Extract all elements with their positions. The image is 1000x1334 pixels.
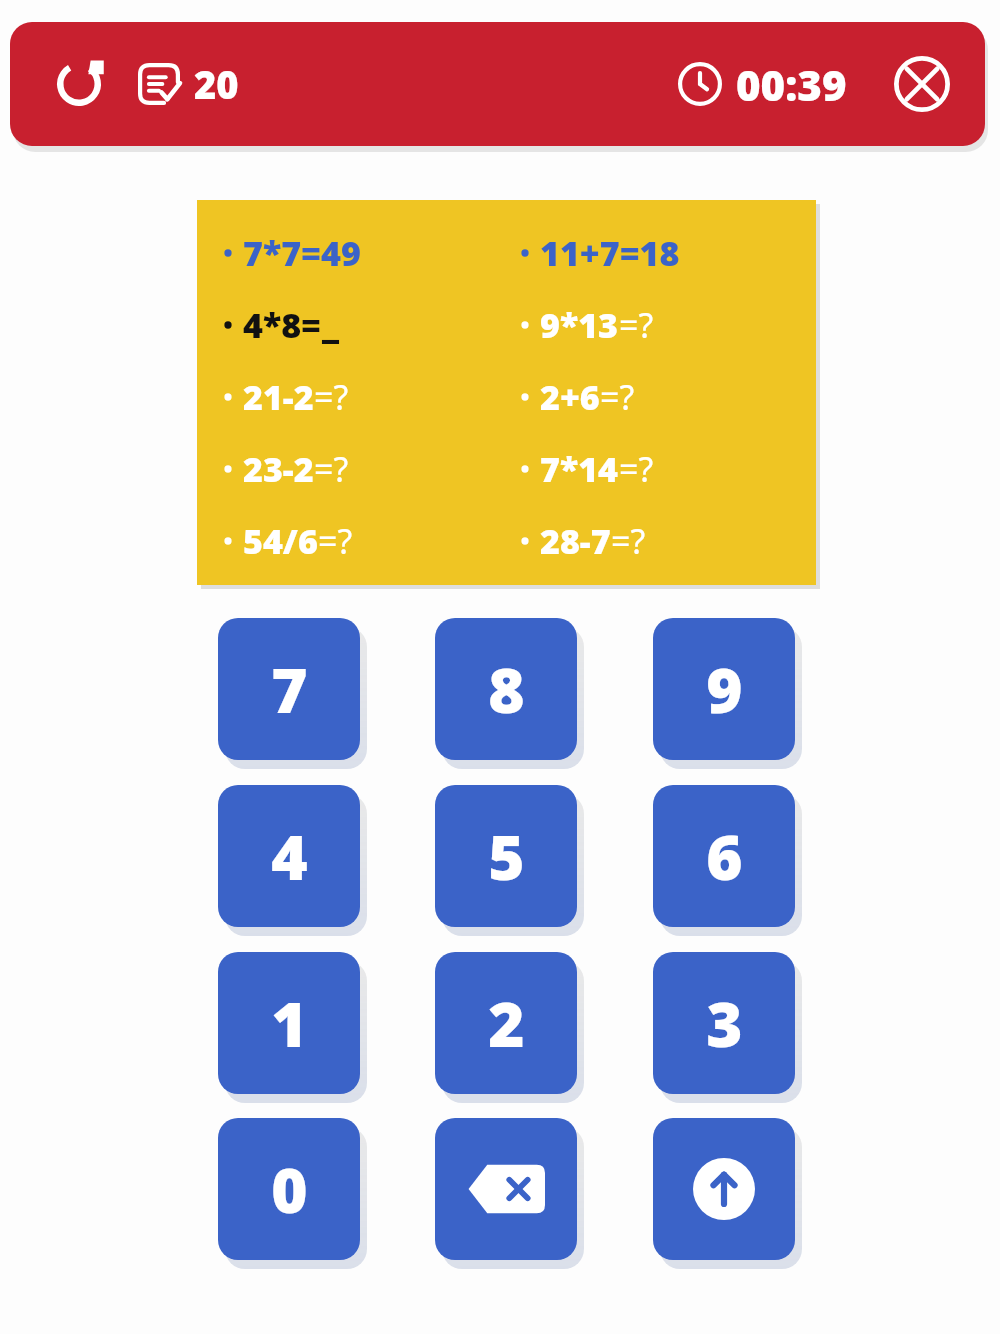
button[interactable]: 5: [435, 785, 577, 927]
staticText: 0: [271, 1147, 308, 1231]
staticText: =?: [619, 302, 654, 348]
staticText: 4: [271, 814, 308, 898]
button[interactable]: 2+6: [518, 374, 816, 420]
button[interactable]: 11+7=18: [518, 230, 816, 276]
button[interactable]: 6: [653, 785, 795, 927]
button[interactable]: 23-2: [221, 446, 506, 492]
button[interactable]: Restart: [40, 45, 118, 123]
button[interactable]: 7*7=49: [221, 230, 506, 276]
button[interactable]: 4*8=: [221, 302, 506, 348]
button[interactable]: 20: [138, 44, 239, 124]
button[interactable]: 1: [218, 952, 360, 1094]
button[interactable]: Submit: [653, 1118, 795, 1260]
button[interactable]: 4: [218, 785, 360, 927]
staticText: _: [322, 302, 339, 348]
button[interactable]: 8: [435, 618, 577, 760]
staticText: 6: [706, 814, 743, 898]
button[interactable]: 28-7: [518, 518, 816, 564]
staticText: 23-2: [243, 446, 314, 492]
staticText: 2+6: [540, 374, 600, 420]
button[interactable]: 7*14: [518, 446, 816, 492]
button[interactable]: 00:39: [678, 44, 847, 124]
button[interactable]: Backspace: [435, 1118, 577, 1260]
staticText: 21-2: [243, 374, 314, 420]
staticText: 9: [706, 647, 743, 731]
button[interactable]: Close: [887, 49, 957, 119]
staticText: 00:39: [736, 56, 847, 113]
staticText: 8: [488, 647, 525, 731]
staticText: 11+7=18: [540, 230, 680, 276]
staticText: =?: [600, 374, 635, 420]
staticText: =?: [318, 518, 353, 564]
staticText: 20: [194, 58, 239, 110]
staticText: =?: [314, 446, 349, 492]
button[interactable]: 3: [653, 952, 795, 1094]
button[interactable]: 0: [218, 1118, 360, 1260]
staticText: 2: [488, 981, 525, 1065]
staticText: =?: [314, 374, 349, 420]
staticText: 7*7=49: [243, 230, 361, 276]
button[interactable]: 7: [218, 618, 360, 760]
button[interactable]: 2: [435, 952, 577, 1094]
button[interactable]: 9: [653, 618, 795, 760]
button[interactable]: 9*13: [518, 302, 816, 348]
button[interactable]: 54/6: [221, 518, 506, 564]
staticText: =?: [619, 446, 654, 492]
staticText: 7*14: [540, 446, 619, 492]
staticText: 7: [271, 647, 308, 731]
staticText: 3: [706, 981, 743, 1065]
staticText: 5: [488, 814, 525, 898]
staticText: 28-7: [540, 518, 611, 564]
staticText: 1: [271, 981, 308, 1065]
staticText: 4*8=: [243, 302, 322, 348]
staticText: 9*13: [540, 302, 619, 348]
staticText: 54/6: [243, 518, 318, 564]
staticText: =?: [611, 518, 646, 564]
button[interactable]: 21-2: [221, 374, 506, 420]
